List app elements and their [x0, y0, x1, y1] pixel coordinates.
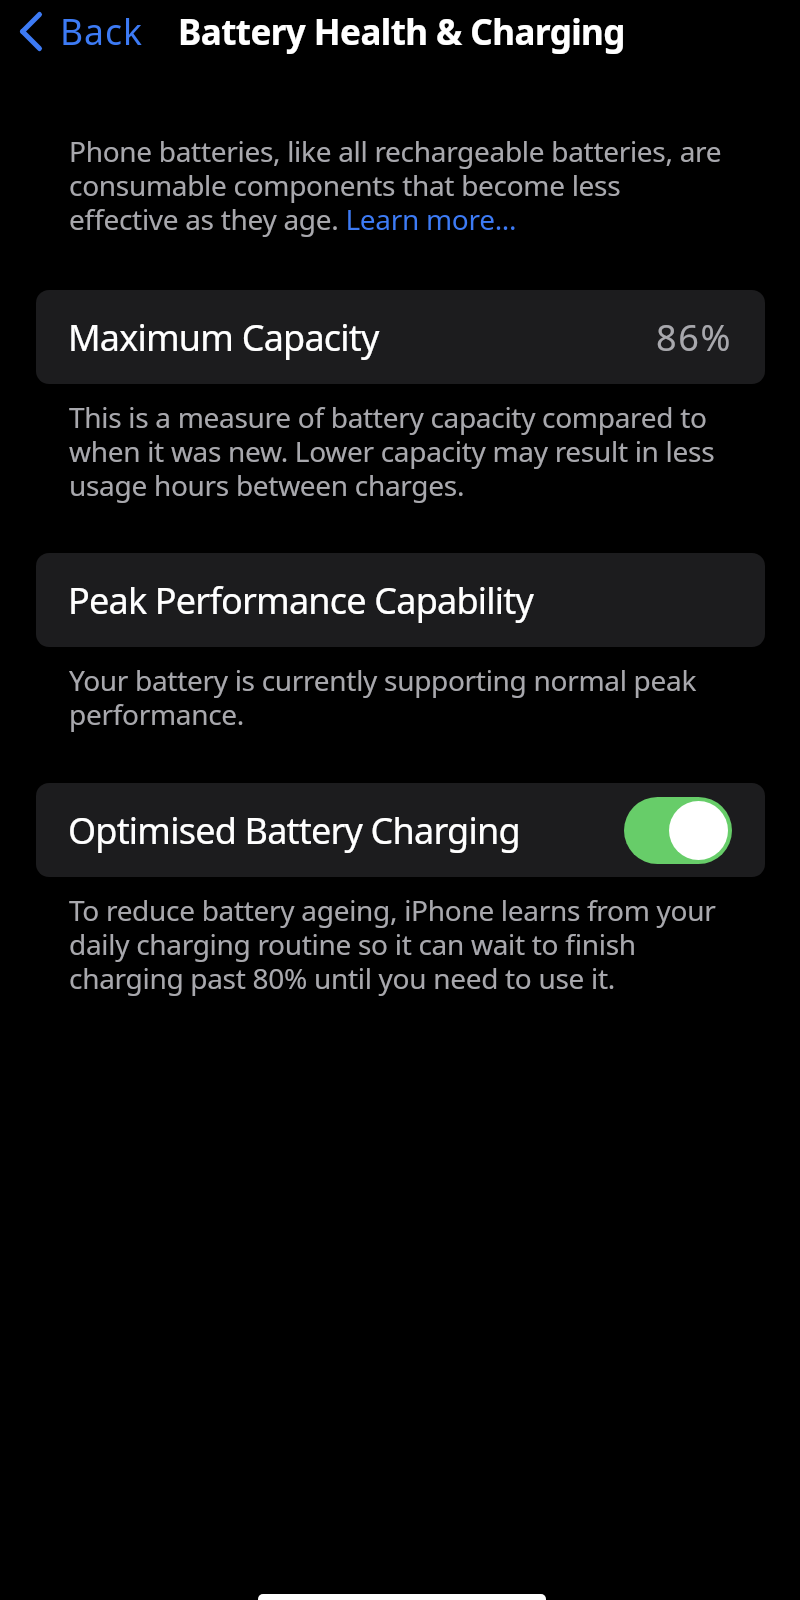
button[interactable]: Peak Performance Capability — [36, 553, 765, 647]
staticText: To reduce battery ageing, iPhone learns … — [69, 891, 736, 997]
staticText: This is a measure of battery capacity co… — [69, 398, 736, 504]
button[interactable]: Maximum Capacity — [36, 290, 765, 384]
staticText: Phone batteries, like all rechargeable b… — [69, 132, 736, 238]
staticText: Battery Health & Charging — [178, 8, 625, 56]
staticText: Peak Performance Capability — [68, 576, 533, 625]
staticText: 86% — [656, 313, 732, 362]
button[interactable]: Back — [16, 3, 147, 59]
staticText: Maximum Capacity — [68, 313, 379, 362]
staticText: Your battery is currently supporting nor… — [69, 661, 736, 733]
button[interactable]: Optimised Battery Charging — [36, 783, 765, 877]
button[interactable]: Optimised Battery Charging toggle — [624, 797, 732, 864]
button[interactable]: Learn more — [346, 204, 516, 236]
staticText: Optimised Battery Charging — [68, 806, 520, 855]
staticText: Back — [60, 7, 143, 55]
